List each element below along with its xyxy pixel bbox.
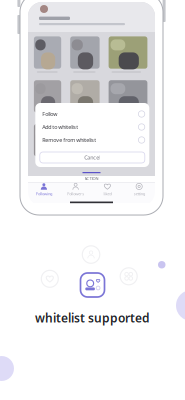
staticText: Following	[36, 191, 52, 196]
button[interactable]: setting	[123, 183, 155, 197]
button[interactable]: Following	[28, 183, 60, 197]
staticText: whitelist supported	[35, 310, 150, 326]
staticText: Remove from whitelist	[42, 136, 96, 144]
button[interactable]: Remove from whitelist	[35, 133, 149, 146]
staticText: ACTION	[84, 176, 98, 181]
staticText: Add to whitelist	[42, 123, 78, 131]
button[interactable]: Add to whitelist	[35, 120, 149, 133]
button[interactable]: Cancel	[40, 152, 145, 163]
button[interactable]: Follow	[35, 107, 149, 120]
button[interactable]: Followers	[60, 183, 92, 197]
staticText: setting	[134, 191, 145, 196]
button[interactable]: liked	[91, 183, 123, 197]
staticText: Followers	[67, 191, 84, 196]
staticText: Cancel	[84, 154, 100, 161]
staticText: liked	[103, 191, 111, 196]
staticText: Follow	[42, 110, 57, 118]
